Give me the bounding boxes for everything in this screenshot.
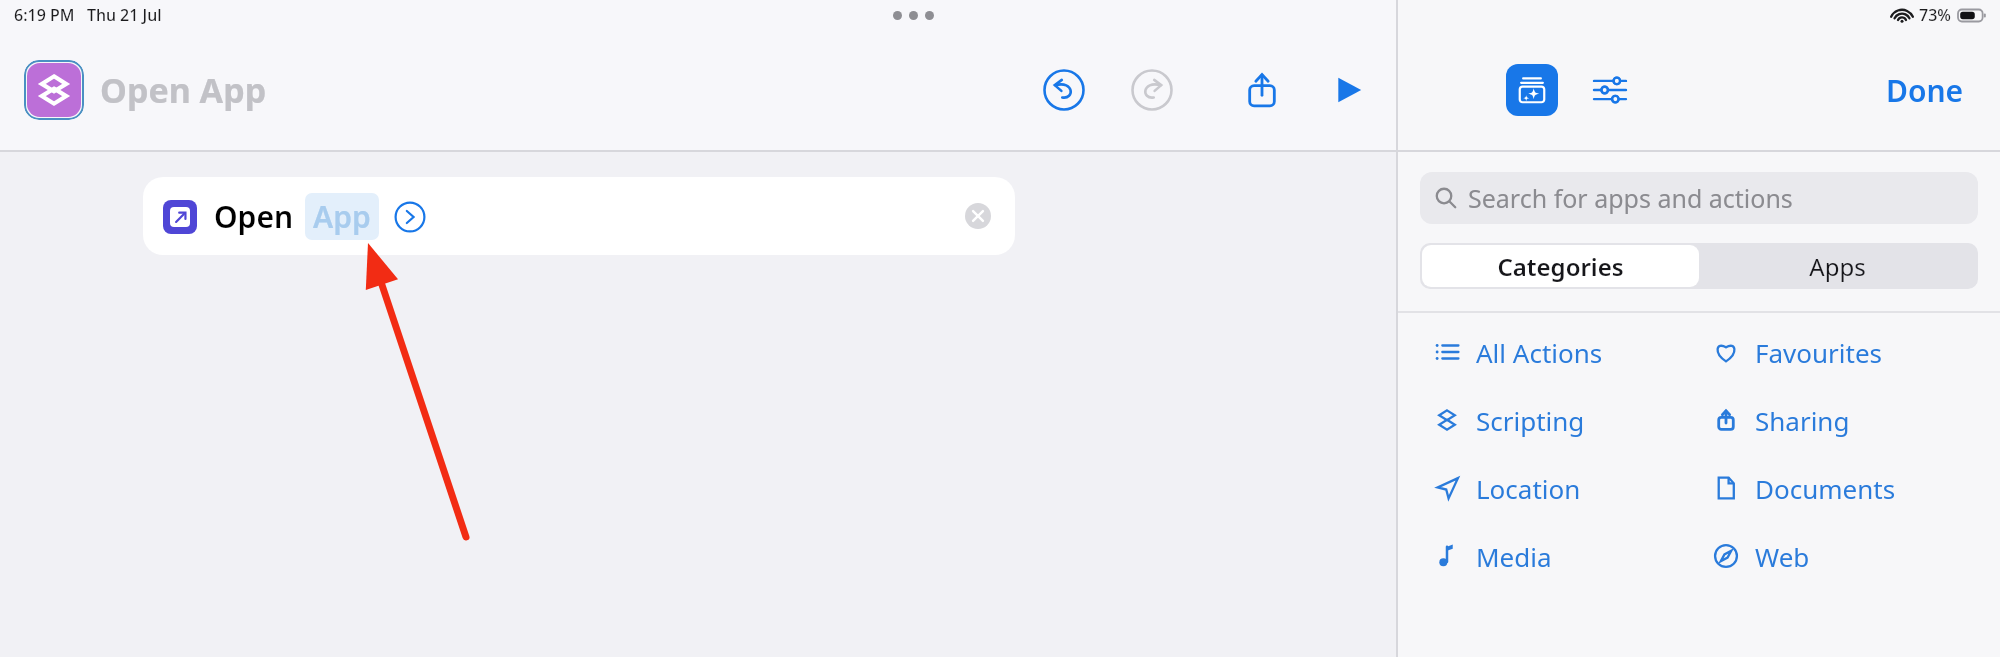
staticText: Open App xyxy=(100,67,267,113)
button[interactable]: Play xyxy=(1322,64,1374,116)
button[interactable]: Sharing xyxy=(1699,399,1978,441)
button[interactable]: App xyxy=(313,196,371,237)
button[interactable]: Favourites xyxy=(1699,331,1978,373)
staticText: Open xyxy=(214,196,294,237)
staticText: Apps xyxy=(1809,250,1866,283)
staticText: All Actions xyxy=(1476,335,1603,370)
button[interactable]: Redo xyxy=(1126,64,1178,116)
button[interactable]: Documents xyxy=(1699,467,1978,509)
button[interactable]: Expand xyxy=(391,198,429,236)
staticText: Favourites xyxy=(1755,335,1883,370)
button[interactable]: Undo xyxy=(1038,64,1090,116)
staticText: Web xyxy=(1755,539,1810,574)
staticText: Location xyxy=(1476,471,1581,506)
staticText: Sharing xyxy=(1755,403,1850,438)
staticText: Done xyxy=(1886,70,1964,111)
staticText: Media xyxy=(1476,539,1552,574)
button[interactable]: Web xyxy=(1699,535,1978,577)
staticText: App xyxy=(313,196,371,237)
button[interactable]: Apps xyxy=(1699,245,1976,287)
button[interactable]: Action library xyxy=(1506,64,1558,116)
button[interactable]: Scripting xyxy=(1420,399,1699,441)
button[interactable]: Share xyxy=(1236,64,1288,116)
staticText: Search for apps and actions xyxy=(1468,181,1793,215)
button[interactable]: Categories xyxy=(1422,245,1699,287)
staticText: Categories xyxy=(1497,250,1624,283)
button[interactable]: Location xyxy=(1420,467,1699,509)
button[interactable]: Open xyxy=(143,177,1015,255)
button[interactable]: Remove action xyxy=(961,199,995,233)
button[interactable]: Media xyxy=(1420,535,1699,577)
staticText: 6:19 PM Thu 21 Jul xyxy=(14,4,162,26)
staticText: Scripting xyxy=(1476,403,1585,438)
staticText: Documents xyxy=(1755,471,1896,506)
button[interactable]: Settings xyxy=(1586,66,1634,114)
button[interactable]: Done xyxy=(1880,64,1970,117)
staticText: 73% xyxy=(1919,4,1951,26)
button[interactable]: All Actions xyxy=(1420,331,1699,373)
button[interactable]: Search for apps and actions xyxy=(1420,172,1978,224)
button[interactable]: Shortcut icon xyxy=(27,63,81,117)
